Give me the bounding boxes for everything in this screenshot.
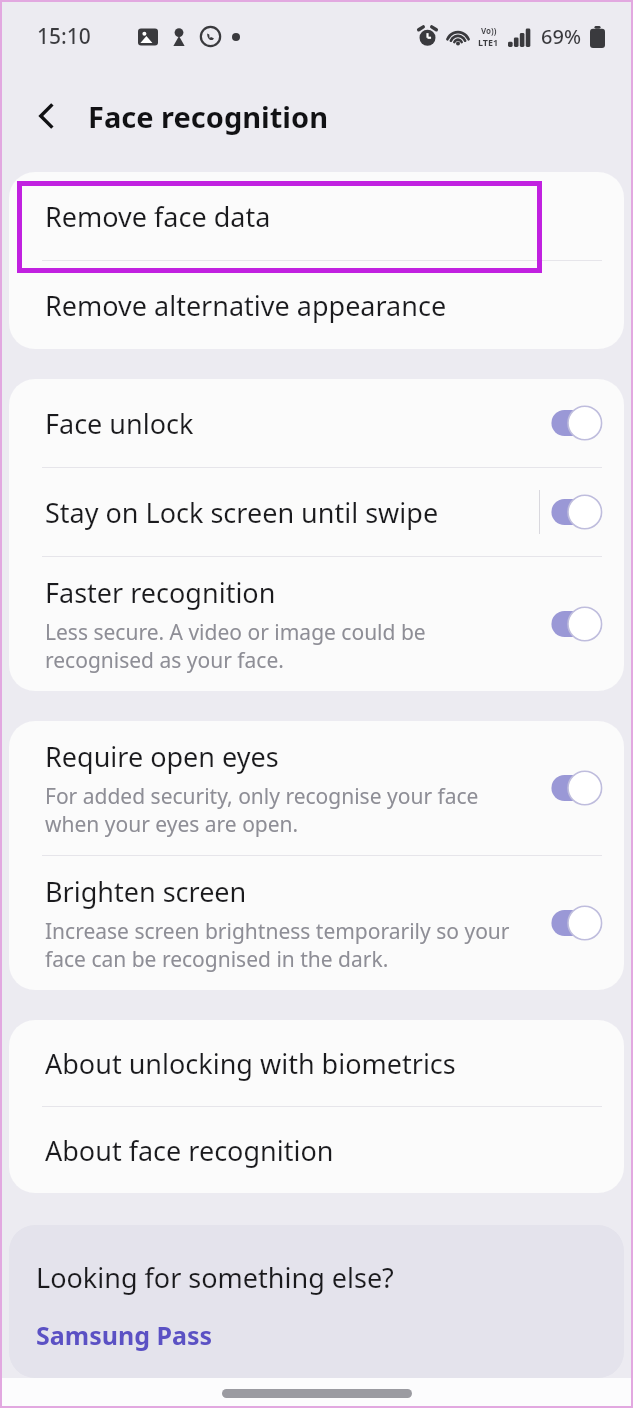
staticText: Samsung Pass	[36, 1318, 213, 1352]
staticText: Faster recognition	[45, 574, 276, 611]
staticText: About face recognition	[45, 1132, 334, 1169]
button[interactable]: Stay on Lock screen until swipe	[9, 468, 624, 556]
button[interactable]: Back	[22, 91, 72, 141]
button[interactable]: Samsung Pass	[36, 1318, 213, 1352]
staticText: Less secure. A video or image could be r…	[45, 618, 426, 674]
staticText: Vo))	[481, 25, 497, 36]
staticText: Remove face data	[45, 198, 271, 235]
staticText: LTE1	[478, 36, 499, 48]
button[interactable]: Faster recognition	[9, 557, 624, 691]
staticText: Require open eyes	[45, 738, 279, 775]
staticText: 69%	[541, 23, 581, 50]
staticText: Remove alternative appearance	[45, 287, 447, 324]
staticText: Brighten screen	[45, 873, 247, 910]
staticText: Increase screen brightness temporarily s…	[45, 917, 510, 973]
staticText: About unlocking with biometrics	[45, 1045, 456, 1082]
staticText: For added security, only recognise your …	[45, 782, 479, 838]
button[interactable]: Remove face data	[9, 172, 624, 260]
button[interactable]: Brighten screen	[9, 856, 624, 990]
staticText: Face unlock	[45, 405, 194, 442]
button[interactable]: Remove alternative appearance	[9, 261, 624, 349]
staticText: Stay on Lock screen until swipe	[45, 494, 439, 531]
button[interactable]: Face unlock	[9, 379, 624, 467]
staticText: Face recognition	[88, 97, 328, 136]
button[interactable]: About unlocking with biometrics	[9, 1020, 624, 1106]
staticText: Looking for something else?	[36, 1259, 394, 1296]
staticText: 15:10	[37, 22, 91, 51]
button[interactable]: About face recognition	[9, 1107, 624, 1193]
button[interactable]: Require open eyes	[9, 721, 624, 855]
